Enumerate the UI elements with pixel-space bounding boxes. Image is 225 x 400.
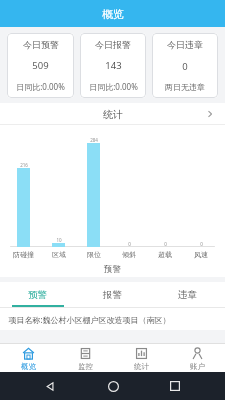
button[interactable]: Statistics: [113, 344, 169, 372]
button[interactable]: 今日报警: [80, 33, 146, 98]
button[interactable]: Recent apps: [163, 374, 187, 398]
staticText: 限位: [87, 250, 101, 259]
staticText: 统计: [103, 108, 123, 121]
staticText: 统计: [134, 362, 149, 371]
staticText: 项目名称:魏公村小区棚户区改造项目（南区）: [8, 314, 171, 325]
button[interactable]: 今日预警: [7, 33, 74, 98]
staticText: 预警: [104, 264, 121, 275]
staticText: 防碰撞: [13, 250, 34, 259]
button[interactable]: Account: [169, 344, 225, 372]
staticText: 账户: [190, 362, 205, 371]
staticText: 143: [105, 59, 122, 72]
staticText: 概览: [102, 7, 124, 21]
button[interactable]: Home: [101, 374, 125, 398]
staticText: 0: [200, 241, 203, 247]
staticText: 倾斜: [122, 250, 136, 259]
button[interactable]: 预警: [0, 282, 75, 307]
other: Overview: [22, 347, 35, 360]
button[interactable]: 今日违章: [152, 33, 218, 98]
other: Monitoring: [79, 347, 92, 360]
button[interactable]: 项目名称:魏公村小区棚户区改造项目（南区）: [0, 308, 225, 330]
staticText: 509: [32, 59, 49, 72]
staticText: 日同比:0.00%: [89, 81, 138, 92]
button[interactable]: 违章: [150, 282, 225, 307]
staticText: 日同比:0.00%: [16, 81, 65, 92]
staticText: 超载: [158, 250, 172, 259]
staticText: 0: [182, 60, 188, 73]
staticText: 监控: [78, 362, 93, 371]
button[interactable]: Overview: [0, 344, 57, 372]
other: Account: [191, 347, 204, 360]
staticText: 0: [128, 241, 131, 247]
staticText: 区域: [52, 250, 66, 259]
button[interactable]: Back: [38, 374, 62, 398]
staticText: 两日无违章: [165, 82, 205, 92]
staticText: 概览: [21, 362, 36, 371]
staticText: 今日报警: [95, 39, 131, 50]
staticText: 0: [164, 241, 167, 247]
button[interactable]: 统计: [0, 103, 225, 125]
staticText: 今日预警: [23, 39, 59, 50]
other: Statistics: [135, 347, 148, 360]
other: More statistics: [205, 109, 215, 119]
staticText: 预警: [28, 289, 47, 301]
staticText: 风速: [194, 250, 208, 259]
button[interactable]: 报警: [75, 282, 150, 307]
button[interactable]: Monitoring: [57, 344, 113, 372]
staticText: 284: [90, 137, 98, 143]
staticText: 10: [56, 237, 62, 243]
staticText: 今日违章: [167, 39, 203, 50]
staticText: 违章: [178, 289, 197, 301]
staticText: 报警: [103, 289, 122, 301]
staticText: 216: [20, 162, 28, 168]
